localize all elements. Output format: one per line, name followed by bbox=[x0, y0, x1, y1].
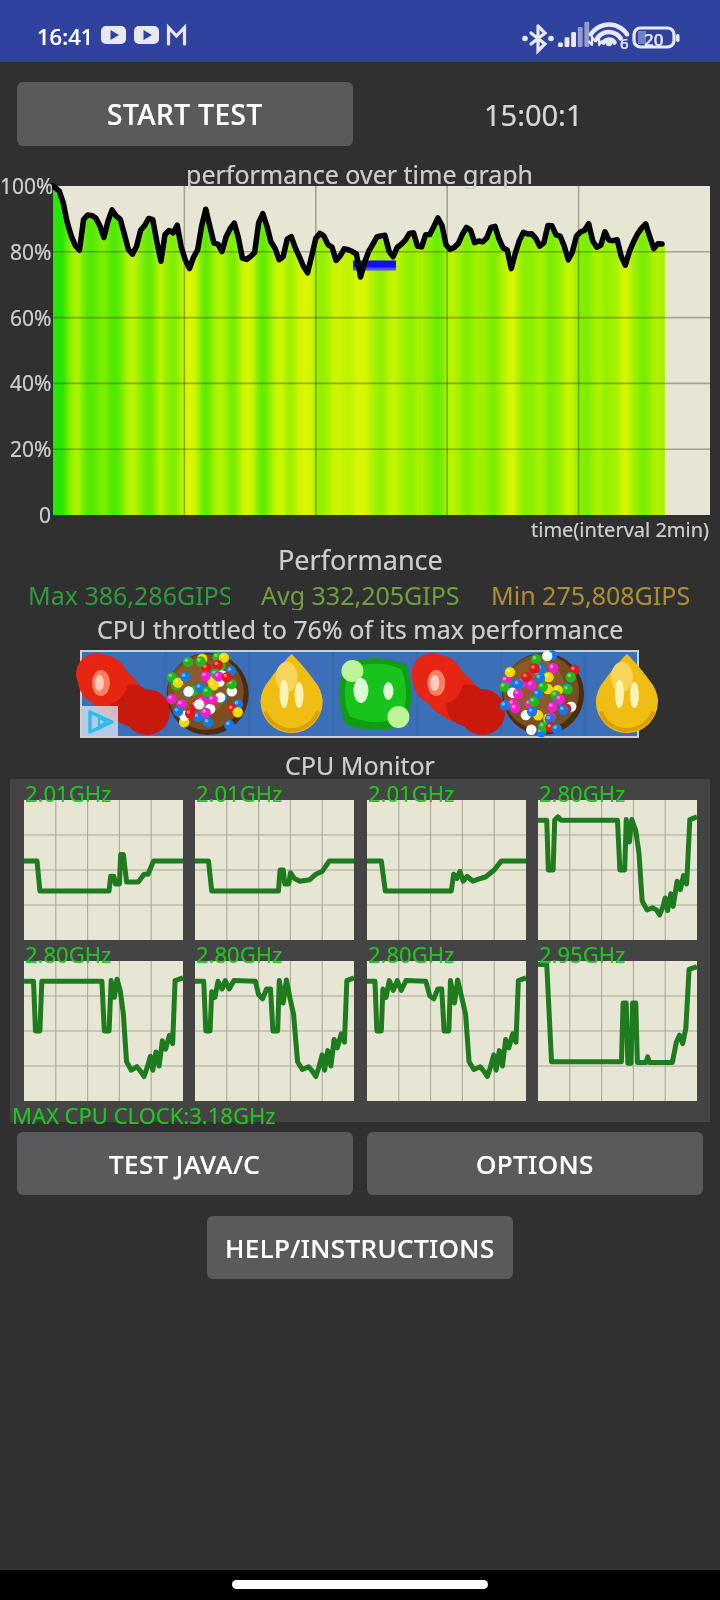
staticText: 40% bbox=[10, 369, 52, 398]
staticText: 6 bbox=[620, 33, 629, 53]
staticText: 15:00:1 bbox=[484, 95, 583, 134]
button[interactable]: TEST JAVA/C bbox=[17, 1132, 353, 1195]
staticText: START TEST bbox=[107, 95, 263, 133]
staticText: 2.95GHz bbox=[539, 939, 626, 963]
button[interactable]: START TEST bbox=[17, 82, 353, 146]
staticText: 0 bbox=[39, 501, 52, 530]
button[interactable]: Advertisement bbox=[80, 650, 639, 738]
staticText: Avg 332,205GIPS bbox=[261, 578, 460, 610]
staticText: Max 386,286GIPS bbox=[28, 578, 230, 610]
staticText: 2.80GHz bbox=[196, 939, 283, 963]
staticText: 100% bbox=[0, 172, 52, 201]
staticText: 2.01GHz bbox=[368, 778, 455, 802]
staticText: Min 275,808GIPS bbox=[491, 578, 691, 610]
staticText: CPU throttled to 76% of its max performa… bbox=[97, 612, 624, 644]
staticText: time(interval 2min) bbox=[531, 516, 710, 542]
staticText: 2.01GHz bbox=[25, 778, 112, 802]
staticText: CPU Monitor bbox=[285, 748, 435, 780]
button[interactable]: HELP/INSTRUCTIONS bbox=[207, 1216, 513, 1279]
staticText: 2.80GHz bbox=[368, 939, 455, 963]
staticText: 2.80GHz bbox=[539, 778, 626, 802]
staticText: Performance bbox=[278, 541, 443, 573]
button[interactable]: OPTIONS bbox=[367, 1132, 703, 1195]
staticText: 2.80GHz bbox=[25, 939, 112, 963]
staticText: 80% bbox=[10, 238, 52, 267]
staticText: 20% bbox=[10, 435, 52, 464]
staticText: performance over time graph bbox=[186, 157, 534, 189]
staticText: 20 bbox=[644, 28, 664, 47]
staticText: HELP/INSTRUCTIONS bbox=[225, 1230, 495, 1265]
staticText: OPTIONS bbox=[476, 1146, 594, 1181]
staticText: 2.01GHz bbox=[196, 778, 283, 802]
staticText: 16:41 bbox=[37, 21, 94, 51]
staticText: MAX CPU CLOCK:3.18GHz bbox=[12, 1100, 276, 1124]
staticText: 60% bbox=[10, 304, 52, 333]
staticText: TEST JAVA/C bbox=[109, 1146, 261, 1181]
